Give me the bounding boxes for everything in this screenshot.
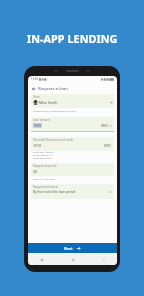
button[interactable]: Recents	[37, 255, 46, 264]
button[interactable]: Loan amount	[31, 117, 114, 132]
staticText: 30	[33, 169, 38, 174]
staticText: From	[33, 95, 40, 99]
staticText: IN-APP LENDING	[27, 31, 118, 46]
button[interactable]: Next	[28, 243, 117, 253]
staticText: 1000	[33, 123, 42, 128]
staticText: Mike Smith	[39, 100, 58, 105]
staticText: Next	[64, 246, 73, 251]
staticText: Request a loan	[38, 85, 68, 91]
staticText: at rate from 1 percent for entire period…	[33, 151, 54, 160]
staticText: Repayment/interest	[33, 185, 59, 189]
staticText: 1010	[33, 143, 42, 148]
button[interactable]: Repayment period	[31, 163, 114, 176]
button[interactable]: Repayment/interest	[31, 184, 114, 199]
staticText: By the end of the loan period	[33, 190, 76, 194]
button[interactable]: Home	[68, 255, 77, 264]
staticText: Repayment period	[33, 164, 57, 168]
staticText: from 1 to 120 days	[33, 177, 55, 180]
staticText: contact name, email address or IBAN	[33, 109, 77, 112]
staticText: 13:04	[31, 77, 38, 81]
button[interactable]: Back	[99, 255, 108, 264]
button[interactable]: Back	[30, 85, 37, 92]
staticText: WMZ	[101, 124, 108, 128]
button[interactable]: From	[31, 94, 114, 108]
staticText: The total/Time amount of credit	[33, 138, 74, 142]
button[interactable]: The total/Time amount of credit	[31, 137, 114, 151]
staticText: WMZ	[104, 144, 111, 148]
staticText: Loan amount	[33, 118, 50, 122]
